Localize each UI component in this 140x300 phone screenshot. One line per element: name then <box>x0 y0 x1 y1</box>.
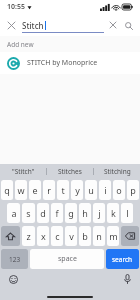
staticText: a <box>11 207 17 219</box>
button[interactable]: o <box>113 180 125 200</box>
button[interactable]: i <box>99 180 111 200</box>
button[interactable]: space <box>30 249 104 269</box>
button[interactable]: g <box>65 203 77 223</box>
staticText: z <box>26 230 31 242</box>
button[interactable]: w <box>15 180 27 200</box>
staticText: x <box>41 230 46 242</box>
button[interactable]: k <box>107 203 119 223</box>
staticText: v <box>69 230 74 242</box>
button[interactable]: p <box>127 180 139 200</box>
button[interactable]: q <box>1 180 13 200</box>
staticText: d <box>40 207 46 219</box>
button[interactable]: c <box>51 226 63 246</box>
staticText: f <box>55 207 59 219</box>
staticText: s <box>26 207 31 219</box>
button[interactable]: Search <box>122 19 135 32</box>
staticText: y <box>75 184 80 196</box>
button[interactable]: STITCH by Monoprice <box>0 52 140 74</box>
staticText: w <box>17 184 25 196</box>
button[interactable]: Emoji <box>6 272 20 286</box>
button[interactable]: x <box>37 226 49 246</box>
staticText: 123 <box>9 255 21 264</box>
staticText: g <box>68 207 74 219</box>
button[interactable]: l <box>121 203 133 223</box>
button[interactable]: 123 <box>1 249 28 269</box>
staticText: k <box>111 207 116 219</box>
staticText: j <box>98 207 101 219</box>
button[interactable]: b <box>79 226 91 246</box>
button[interactable]: t <box>57 180 69 200</box>
staticText: Add new <box>7 40 34 49</box>
staticText: c <box>55 230 60 242</box>
staticText: n <box>96 230 102 242</box>
staticText: e <box>32 184 38 196</box>
button[interactable]: h <box>79 203 91 223</box>
staticText: Stitch <box>22 20 44 31</box>
button[interactable]: search <box>106 249 139 269</box>
staticText: Stitching <box>104 167 131 176</box>
staticText: Stitches <box>58 167 82 176</box>
staticText: STITCH by Monoprice <box>27 58 98 68</box>
button[interactable]: j <box>93 203 105 223</box>
button[interactable]: Voice input <box>120 272 134 286</box>
button[interactable]: n <box>93 226 105 246</box>
staticText: o <box>116 184 122 196</box>
staticText: l <box>126 207 129 219</box>
button[interactable]: s <box>22 203 35 223</box>
button[interactable]: e <box>29 180 41 200</box>
staticText: p <box>130 184 136 196</box>
staticText: space <box>58 254 77 264</box>
staticText: t <box>61 184 65 196</box>
button[interactable]: y <box>71 180 83 200</box>
button[interactable]: v <box>65 226 77 246</box>
button[interactable]: z <box>22 226 35 246</box>
button[interactable]: f <box>51 203 63 223</box>
button[interactable]: Close <box>5 19 18 32</box>
staticText: b <box>82 230 88 242</box>
button[interactable]: "Stitch" <box>0 164 46 178</box>
button[interactable]: Stitching <box>94 164 140 178</box>
button[interactable]: m <box>107 226 119 246</box>
button[interactable]: u <box>85 180 97 200</box>
button[interactable]: r <box>43 180 55 200</box>
button[interactable]: a <box>7 203 20 223</box>
button[interactable]: Clear text <box>107 19 119 31</box>
staticText: h <box>82 207 88 219</box>
staticText: 10:55 <box>7 2 25 12</box>
staticText: q <box>4 184 10 196</box>
staticText: "Stitch" <box>12 167 35 176</box>
staticText: r <box>47 184 51 196</box>
button[interactable]: Shift <box>1 226 20 246</box>
button[interactable]: Backspace <box>121 226 139 246</box>
staticText: u <box>88 184 94 196</box>
staticText: i <box>104 184 107 196</box>
staticText: m <box>109 230 118 242</box>
staticText: search <box>112 255 133 264</box>
button[interactable]: Stitch <box>22 14 104 36</box>
button[interactable]: Stitches <box>47 164 93 178</box>
button[interactable]: d <box>37 203 49 223</box>
